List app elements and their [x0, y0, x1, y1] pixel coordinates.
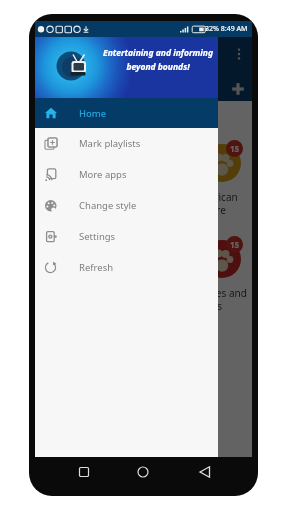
- staticText: Refresh: [79, 261, 114, 274]
- staticText: Home: [79, 107, 107, 120]
- button[interactable]: Settings: [35, 221, 218, 252]
- button[interactable]: Add: [229, 80, 247, 98]
- button[interactable]: Back: [196, 463, 214, 481]
- button[interactable]: More apps: [35, 159, 218, 190]
- button[interactable]: More options: [230, 45, 248, 63]
- button[interactable]: Refresh: [35, 252, 218, 283]
- staticText: culture: [193, 203, 226, 217]
- button[interactable]: Home: [134, 463, 152, 481]
- staticText: 15: [230, 143, 240, 154]
- staticText: Change style: [79, 199, 137, 212]
- staticText: Mark playlists: [79, 137, 141, 150]
- button[interactable]: Home: [35, 98, 218, 128]
- button[interactable]: Change style: [35, 190, 218, 221]
- staticText: More apps: [79, 168, 127, 181]
- staticText: movies and: [193, 286, 247, 300]
- button[interactable]: Recents: [75, 463, 93, 481]
- staticText: Settings: [79, 230, 116, 243]
- staticText: 15: [230, 239, 240, 250]
- staticText: 32% 8:49 AM: [205, 24, 248, 34]
- button[interactable]: Mark playlists: [35, 128, 218, 159]
- staticText: American: [193, 190, 238, 204]
- staticText: Entertaining and informing beyond bounds…: [103, 47, 213, 72]
- staticText: artists: [193, 299, 223, 313]
